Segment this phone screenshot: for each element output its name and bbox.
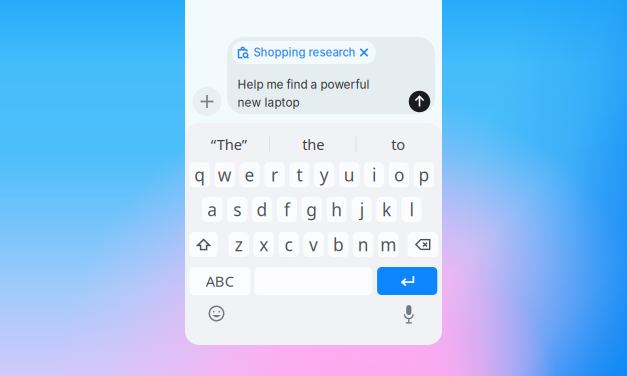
staticText: q [194, 163, 205, 186]
button[interactable]: “The” [188, 129, 270, 159]
button[interactable]: ABC [189, 267, 250, 295]
staticText: s [233, 198, 241, 221]
staticText: f [284, 198, 290, 221]
button[interactable]: q [190, 162, 210, 187]
staticText: t [296, 163, 302, 186]
staticText: j [360, 198, 364, 221]
staticText: new laptop [238, 95, 300, 110]
staticText: Shopping research [253, 46, 355, 59]
button[interactable]: Return [377, 267, 437, 295]
staticText: o [394, 163, 404, 186]
staticText: y [320, 163, 329, 186]
button[interactable]: r [264, 162, 285, 187]
button[interactable]: Shopping research [232, 41, 376, 64]
button[interactable]: m [378, 232, 398, 257]
button[interactable]: z [229, 232, 249, 257]
button[interactable]: p [414, 162, 434, 187]
staticText: c [285, 233, 293, 256]
staticText: h [331, 198, 342, 221]
button[interactable]: l [401, 197, 422, 222]
staticText: r [271, 163, 278, 186]
button[interactable]: h [327, 197, 347, 222]
staticText: d [257, 198, 268, 221]
button[interactable]: to [357, 129, 439, 159]
staticText: z [235, 233, 243, 256]
button[interactable]: s [227, 197, 247, 222]
staticText: Help me find a powerful [238, 77, 370, 91]
button[interactable]: y [314, 162, 334, 187]
staticText: p [418, 163, 429, 186]
button[interactable]: n [353, 232, 373, 257]
button[interactable]: the [272, 129, 354, 159]
button[interactable]: b [328, 232, 348, 257]
button[interactable]: o [389, 162, 409, 187]
button[interactable]: Send [409, 91, 430, 112]
button[interactable]: f [277, 197, 297, 222]
staticText: g [306, 198, 317, 221]
staticText: x [259, 233, 268, 256]
staticText: m [380, 233, 396, 256]
button[interactable]: k [376, 197, 397, 222]
staticText: k [382, 198, 391, 221]
staticText: i [372, 163, 376, 186]
staticText: ABC [206, 271, 234, 291]
button[interactable]: j [351, 197, 372, 222]
staticText: a [207, 198, 217, 221]
button[interactable]: Emoji [201, 298, 231, 328]
button[interactable]: Add attachment [192, 87, 221, 116]
button[interactable]: w [215, 162, 235, 187]
button[interactable]: v [303, 232, 324, 257]
staticText: w [218, 163, 232, 186]
button[interactable]: u [339, 162, 359, 187]
button[interactable]: t [289, 162, 309, 187]
button[interactable]: x [253, 232, 274, 257]
staticText: “The” [211, 135, 247, 154]
staticText: b [333, 233, 344, 256]
button[interactable]: e [239, 162, 260, 187]
button[interactable]: g [302, 197, 322, 222]
staticText: to [391, 135, 405, 154]
button[interactable]: a [202, 197, 222, 222]
staticText: n [358, 233, 369, 256]
staticText: v [309, 233, 318, 256]
button[interactable]: d [252, 197, 272, 222]
staticText: u [344, 163, 355, 186]
staticText: the [302, 135, 324, 154]
button[interactable]: Dictate [394, 298, 424, 328]
button[interactable]: c [278, 232, 299, 257]
button[interactable]: i [364, 162, 384, 187]
staticText: l [409, 198, 413, 221]
button[interactable]: Delete [407, 232, 438, 257]
staticText: e [245, 163, 255, 186]
button[interactable]: Shift [189, 232, 218, 257]
